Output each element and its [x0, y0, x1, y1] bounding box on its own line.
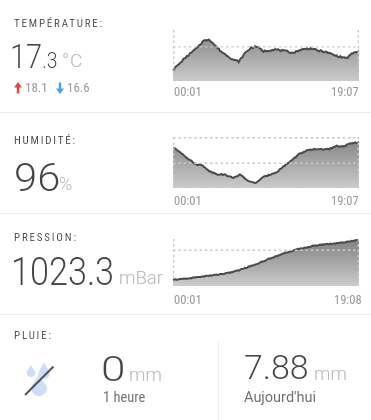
staticText: % [59, 173, 73, 194]
staticText: Aujourd'hui [244, 389, 317, 406]
staticText: 19:07 [331, 193, 359, 208]
staticText: 1023.3 [11, 250, 114, 295]
button[interactable]: PLUIE: [0, 315, 371, 420]
staticText: mBar [119, 267, 163, 289]
staticText: 00:01 [174, 84, 202, 99]
staticText: °C [62, 49, 84, 71]
button[interactable]: PRESSION: [0, 214, 371, 314]
staticText: TEMPÉRATURE: [14, 17, 104, 30]
staticText: 19:08 [334, 292, 362, 307]
staticText: 17.3 [10, 37, 58, 76]
staticText: 18.1 [25, 80, 48, 95]
staticText: 1 heure [103, 389, 146, 406]
button[interactable]: HUMIDITÉ: [0, 113, 371, 213]
staticText: 96 [14, 155, 61, 200]
staticText: 00:01 [174, 292, 202, 307]
staticText: 0 [101, 349, 126, 390]
staticText: mm [129, 364, 162, 386]
staticText: mm [314, 363, 347, 385]
staticText: PLUIE: [14, 329, 53, 342]
staticText: HUMIDITÉ: [14, 134, 77, 147]
staticText: 00:01 [174, 193, 202, 208]
staticText: PRESSION: [14, 231, 78, 244]
button[interactable]: TEMPÉRATURE: [0, 0, 371, 113]
staticText: 19:07 [331, 84, 359, 99]
staticText: 16.6 [67, 80, 90, 95]
staticText: 7.88 [244, 347, 309, 387]
